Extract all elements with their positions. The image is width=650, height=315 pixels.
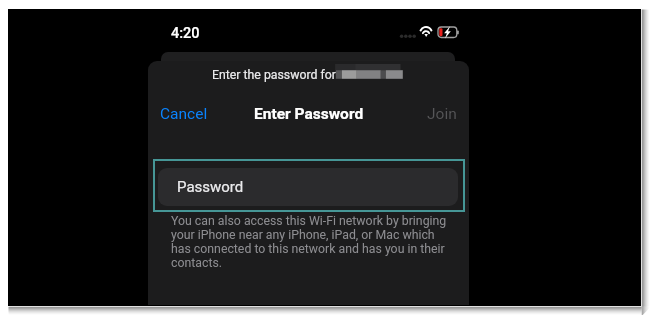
staticText: Enter Password [254,105,364,123]
staticText: You can also access this Wi-Fi network b… [171,214,451,270]
other: Wi-Fi [419,26,434,38]
staticText: Cancel [160,105,208,119]
staticText: Join [427,105,457,119]
staticText: Password [177,178,244,196]
button[interactable]: Join [413,99,469,125]
other: Cellular signal [400,31,418,39]
button[interactable]: Password [158,168,458,206]
staticText: Enter the password for [212,68,336,82]
button[interactable]: Cancel [148,99,222,125]
staticText: 4:20 [171,25,200,42]
other: Battery charging [437,26,467,39]
